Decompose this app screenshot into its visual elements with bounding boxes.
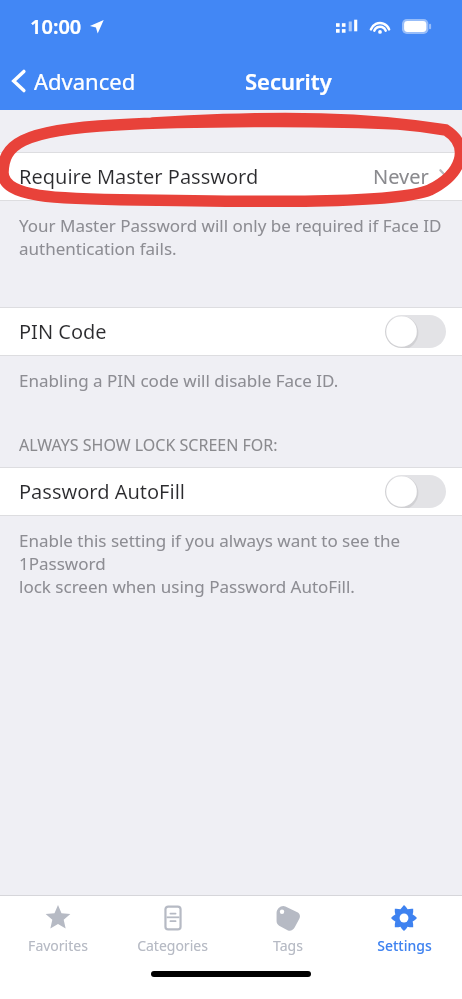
staticText: Settings: [377, 936, 432, 955]
button[interactable]: Toggle off: [385, 315, 446, 348]
staticText: 10:00: [30, 13, 82, 40]
button[interactable]: PIN Code: [0, 308, 462, 355]
staticText: Password AutoFill: [19, 478, 185, 505]
button[interactable]: Password AutoFill: [0, 468, 462, 515]
button[interactable]: Advanced: [0, 60, 148, 102]
button[interactable]: Tags: [230, 905, 346, 955]
staticText: Never: [373, 163, 429, 190]
staticText: Your Master Password will only be requir…: [19, 214, 448, 260]
staticText: Tags: [273, 936, 303, 955]
button[interactable]: Require Master Password: [0, 153, 462, 200]
staticText: Advanced: [34, 66, 136, 96]
staticText: ALWAYS SHOW LOCK SCREEN FOR:: [19, 434, 462, 456]
button[interactable]: Categories: [115, 905, 230, 955]
staticText: Enabling a PIN code will disable Face ID…: [19, 369, 448, 392]
button[interactable]: Toggle off: [385, 475, 446, 508]
staticText: PIN Code: [19, 318, 107, 345]
staticText: Favorites: [28, 936, 88, 955]
button[interactable]: Favorites: [0, 905, 115, 955]
staticText: Enable this setting if you always want t…: [19, 529, 448, 598]
staticText: Categories: [137, 936, 208, 955]
staticText: Security: [245, 66, 332, 96]
button[interactable]: Settings: [346, 905, 462, 955]
staticText: Require Master Password: [19, 163, 259, 190]
